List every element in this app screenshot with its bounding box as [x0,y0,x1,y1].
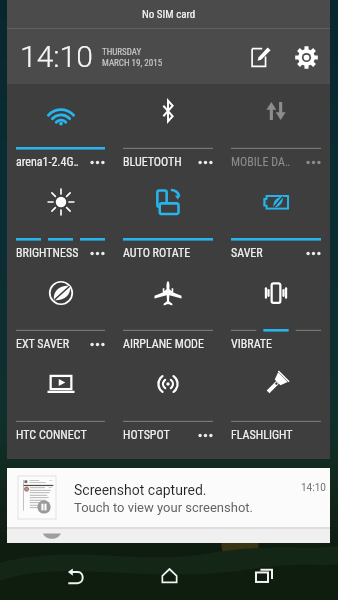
button[interactable]: HTC CONNECT [7,357,114,448]
button[interactable]: VIBRATE [222,266,330,357]
staticText: HTC CONNECT [16,428,87,442]
button[interactable]: FLASHLIGHT [222,357,330,448]
button[interactable]: AIRPLANE MODE [114,266,222,357]
staticText: HOTSPOT [123,428,170,442]
button[interactable]: Screenshot captured. [7,468,330,527]
staticText: FLASHLIGHT [231,428,293,442]
staticText: MOBILE DA‥ [231,155,290,169]
staticText: 14:10 [20,39,93,74]
button[interactable]: Home [146,552,193,599]
button[interactable]: Back [52,552,99,599]
staticText: EXT SAVER [16,337,70,351]
staticText: VIBRATE [231,337,273,351]
staticText: MARCH 19, 2015 [102,58,163,69]
button[interactable]: Settings [285,36,327,78]
staticText: BRIGHTNESS [16,246,79,260]
staticText: Touch to view your screenshot. [74,500,254,515]
button[interactable]: Close notification shade [7,527,330,543]
button[interactable]: AUTO ROTATE [114,175,222,266]
button[interactable]: arena1-2.4G‥ [7,84,114,175]
button[interactable]: MOBILE DA‥ [222,84,330,175]
staticText: No SIM card [142,8,196,21]
staticText: AUTO ROTATE [123,246,191,260]
button[interactable]: Recent apps [240,552,287,599]
staticText: Screenshot captured. [74,482,207,498]
button[interactable]: BLUETOOTH [114,84,222,175]
staticText: THURSDAY [102,47,142,58]
staticText: 14:10 [301,482,326,494]
button[interactable]: BRIGHTNESS [7,175,114,266]
button[interactable]: SAVER [222,175,330,266]
button[interactable]: EXT SAVER [7,266,114,357]
staticText: AIRPLANE MODE [123,337,204,351]
staticText: BLUETOOTH [123,155,182,169]
button[interactable]: HOTSPOT [114,357,222,448]
button[interactable]: Edit quick settings [239,36,281,78]
staticText: arena1-2.4G‥ [16,155,79,169]
staticText: SAVER [231,246,263,260]
